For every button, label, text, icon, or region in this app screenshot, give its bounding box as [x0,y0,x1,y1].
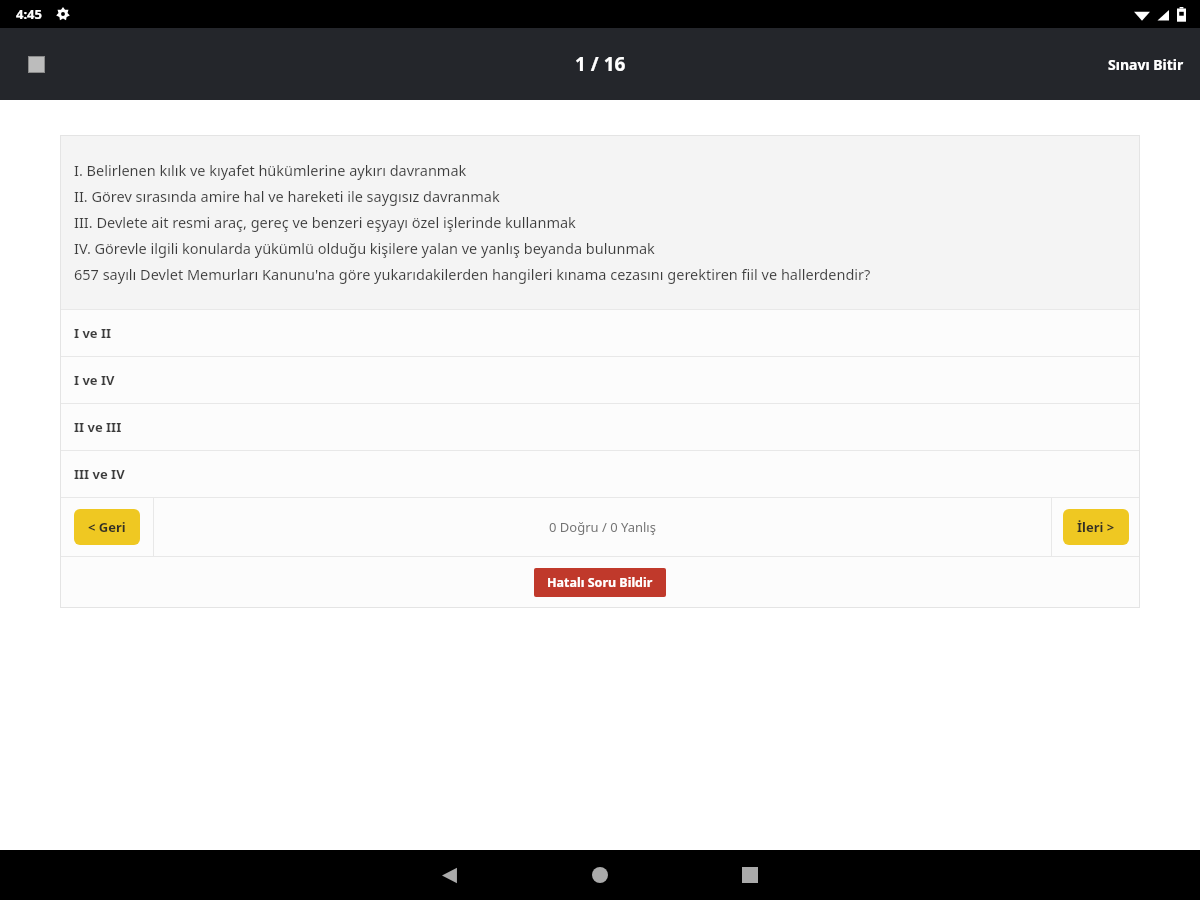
staticText: II. Görev sırasında amire hal ve hareket… [74,186,500,206]
button[interactable]: I ve IV [60,357,1140,403]
button[interactable]: I ve II [60,310,1140,356]
button[interactable]: İleri > [1063,509,1129,545]
button[interactable]: III ve IV [60,451,1140,497]
button[interactable]: Sınavı Bitir [1092,39,1200,90]
button[interactable]: II ve III [60,404,1140,450]
staticText: IV. Görevle ilgili konularda yükümlü old… [74,238,655,258]
staticText: III ve IV [74,465,125,483]
staticText: Sınavı Bitir [1108,55,1184,74]
staticText: İleri > [1077,518,1115,536]
staticText: 0 Doğru / 0 Yanlış [549,518,656,536]
button[interactable]: Menu [19,47,53,81]
button[interactable]: Back [430,855,470,895]
staticText: < Geri [88,518,126,536]
staticText: I ve IV [74,371,115,389]
staticText: II ve III [74,418,122,436]
staticText: III. Devlete ait resmi araç, gereç ve be… [74,212,576,232]
staticText: I. Belirlenen kılık ve kıyafet hükümleri… [74,160,467,180]
button[interactable]: Home [580,855,620,895]
button[interactable]: Hatalı Soru Bildir [534,568,666,597]
staticText: 657 sayılı Devlet Memurları Kanunu'na gö… [74,264,871,284]
staticText: I ve II [74,324,112,342]
staticText: Hatalı Soru Bildir [547,574,653,591]
staticText: 4:45 [16,5,42,23]
button[interactable]: Recents [730,855,770,895]
staticText: 1 / 16 [575,51,626,77]
button[interactable]: < Geri [74,509,140,545]
